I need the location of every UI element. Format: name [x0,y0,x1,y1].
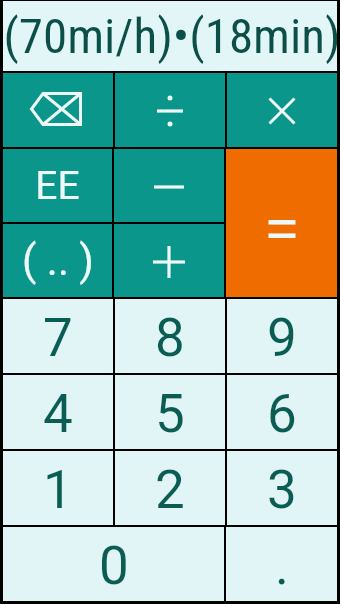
button[interactable]: 8 [115,299,225,373]
button[interactable]: ( .. ) [3,224,112,297]
staticText: 0 [99,535,129,597]
staticText: (70mi/h)•(18min) [3,8,337,65]
button[interactable]: 2 [115,451,225,525]
staticText: 2 [155,459,185,521]
staticText: 9 [267,307,297,369]
button[interactable]: EE [3,149,112,222]
button[interactable]: 0 [3,527,224,601]
button[interactable]: 9 [227,299,337,373]
button[interactable]: . [226,527,337,601]
button[interactable]: 5 [115,375,225,449]
staticText: 3 [267,459,297,521]
staticText: 4 [43,383,73,445]
staticText: 8 [155,307,185,369]
button[interactable] [115,73,225,147]
button[interactable]: 7 [3,299,113,373]
staticText: 1 [43,459,73,521]
staticText: 6 [267,383,297,445]
button[interactable] [226,149,337,297]
staticText: 7 [43,307,73,369]
button[interactable] [114,149,224,222]
staticText: . [275,535,289,597]
button[interactable] [114,224,224,297]
button[interactable] [227,73,337,147]
button[interactable]: (70mi/h)•(18min) [3,1,337,71]
staticText: 5 [155,383,185,445]
button[interactable]: 6 [227,375,337,449]
button[interactable] [3,73,113,147]
staticText: EE [35,163,80,209]
button[interactable]: 4 [3,375,113,449]
button[interactable]: 1 [3,451,113,525]
button[interactable]: 3 [227,451,337,525]
staticText: ( .. ) [22,236,94,285]
